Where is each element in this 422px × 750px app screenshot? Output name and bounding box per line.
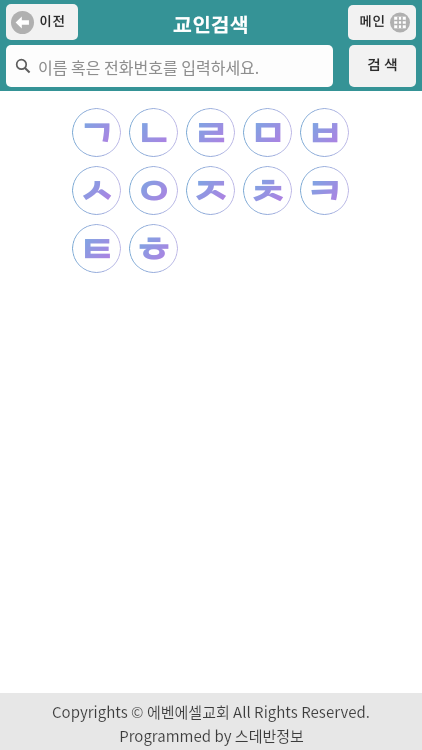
button[interactable]: ㄹ <box>186 108 235 157</box>
button[interactable]: 검 색 <box>349 45 416 87</box>
button[interactable]: ㅈ <box>186 166 235 215</box>
staticText: ㅈ <box>193 166 229 210</box>
button[interactable]: ㅋ <box>300 166 349 215</box>
staticText: ㅂ <box>307 108 343 152</box>
staticText: 이름 혹은 전화번호를 입력하세요. <box>38 55 260 78</box>
staticText: Programmed by 스데반정보 <box>119 725 304 747</box>
button[interactable]: 메인 <box>348 5 416 40</box>
staticText: ㅅ <box>79 166 115 210</box>
staticText: 메인 <box>359 16 385 29</box>
staticText: ㄱ <box>79 108 115 152</box>
button[interactable]: ㅇ <box>129 166 178 215</box>
staticText: ㄴ <box>136 108 172 152</box>
staticText: ㅋ <box>307 166 343 210</box>
staticText: ㄹ <box>193 108 229 152</box>
button[interactable]: 이름 혹은 전화번호를 입력하세요. <box>6 45 333 87</box>
staticText: 교인검색 <box>173 17 249 36</box>
staticText: Copyrights © 에벤에셀교회 All Rights Reserved. <box>52 701 370 723</box>
button[interactable]: ㅌ <box>72 224 121 273</box>
staticText: ㅇ <box>136 166 172 210</box>
button[interactable]: ㄱ <box>72 108 121 157</box>
staticText: 검 색 <box>367 59 399 73</box>
button[interactable]: ㄴ <box>129 108 178 157</box>
button[interactable]: ㅁ <box>243 108 292 157</box>
staticText: ㅎ <box>136 224 172 268</box>
staticText: ㅊ <box>250 166 286 210</box>
button[interactable]: ㅅ <box>72 166 121 215</box>
button[interactable]: ㅎ <box>129 224 178 273</box>
button[interactable]: ㅂ <box>300 108 349 157</box>
staticText: ㅁ <box>250 108 286 152</box>
button[interactable]: 이전 <box>6 4 78 40</box>
staticText: ㅌ <box>79 224 115 268</box>
staticText: 이전 <box>39 16 65 29</box>
other: Main menu <box>390 12 410 33</box>
button[interactable]: ㅊ <box>243 166 292 215</box>
